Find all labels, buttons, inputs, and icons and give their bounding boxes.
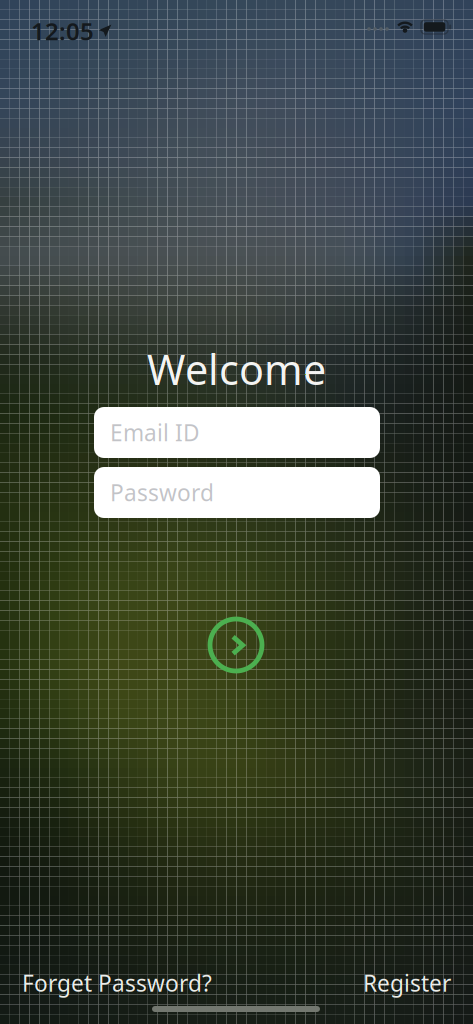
button[interactable]: Register <box>351 968 451 998</box>
staticText: Password <box>110 477 214 507</box>
button[interactable]: Email ID <box>94 407 380 458</box>
staticText: Forget Password? <box>22 968 212 998</box>
staticText: Email ID <box>110 417 200 447</box>
button[interactable]: Continue <box>207 616 265 674</box>
staticText: 12:05 <box>31 15 94 47</box>
staticText: Welcome <box>147 342 326 396</box>
button[interactable]: Forget Password? <box>22 968 222 998</box>
staticText: Register <box>363 968 451 998</box>
button[interactable]: Password <box>94 467 380 518</box>
